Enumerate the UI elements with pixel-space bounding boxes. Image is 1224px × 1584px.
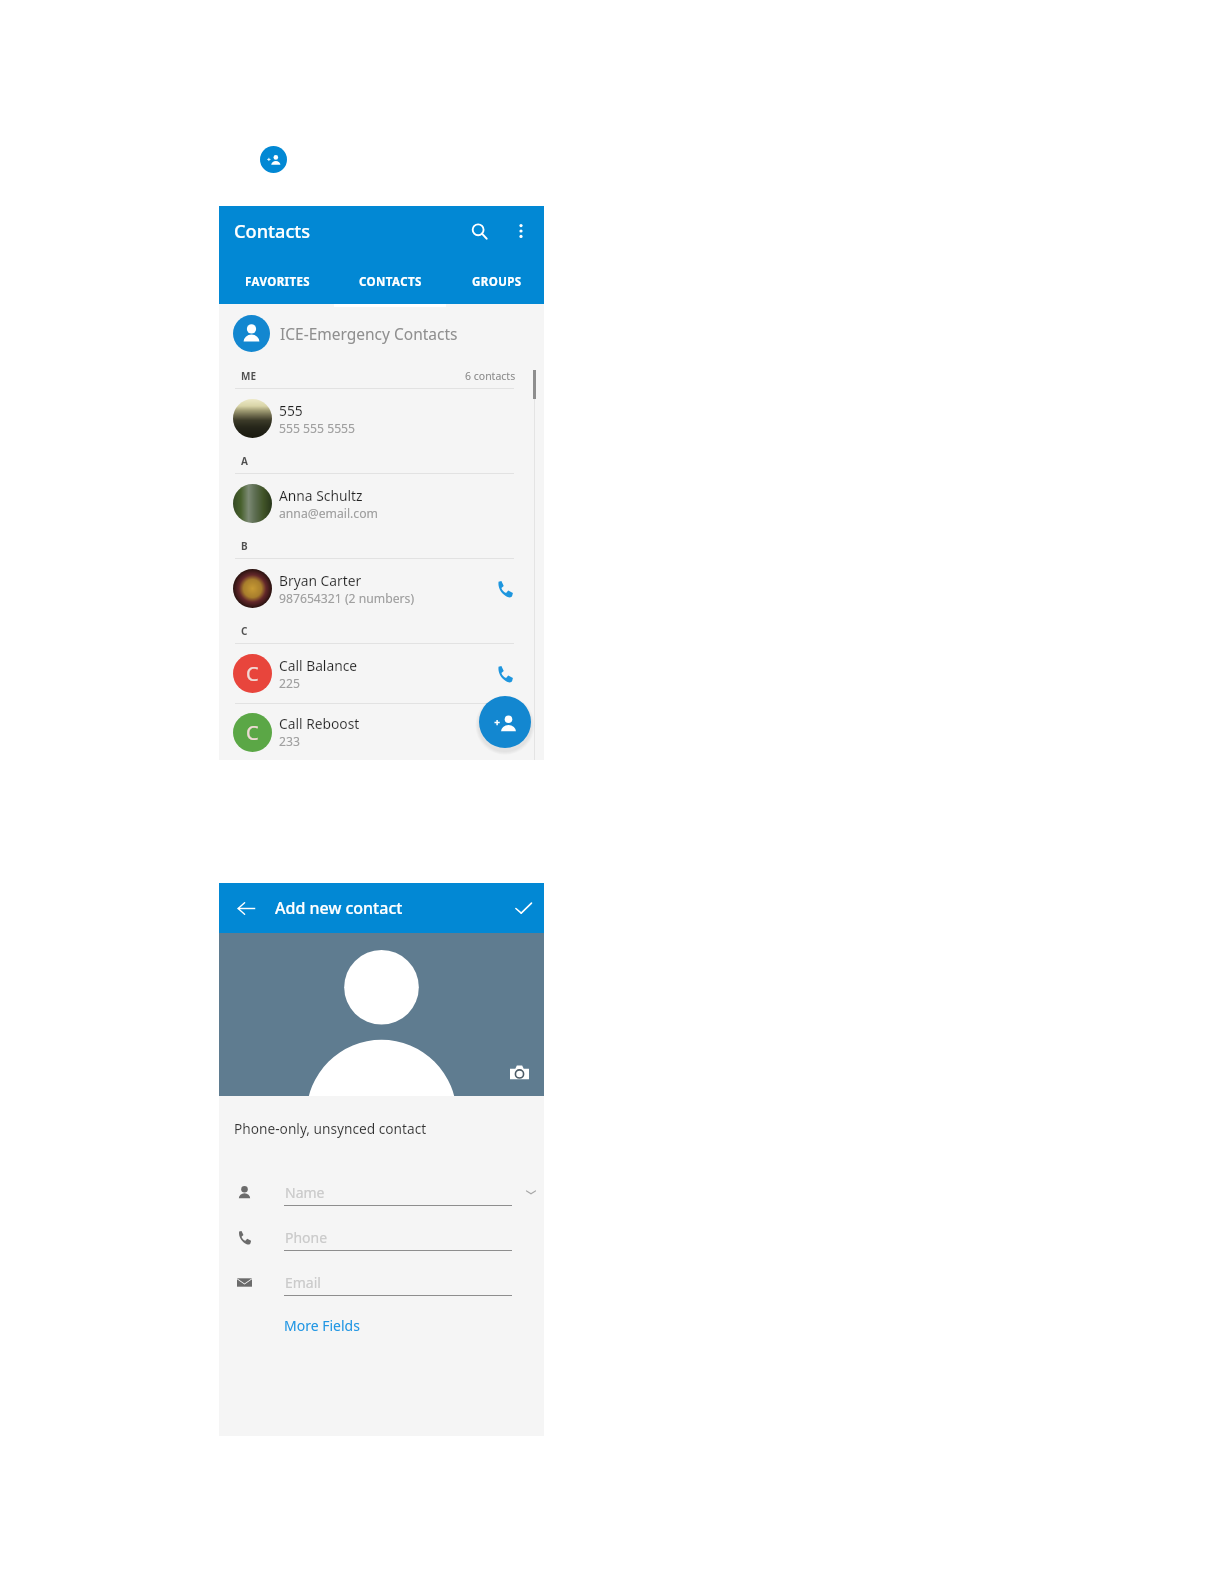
button[interactable]: C (219, 704, 544, 760)
staticText: GROUPS (472, 274, 522, 290)
staticText: 555 555 5555 (279, 420, 356, 437)
staticText: A (241, 454, 248, 468)
button[interactable]: 555 (219, 389, 544, 448)
staticText: Name (285, 1183, 325, 1202)
staticText: 6 contacts (465, 369, 516, 383)
staticText: B (241, 539, 248, 553)
staticText: anna@email.com (279, 505, 378, 522)
staticText: C (241, 624, 248, 638)
button[interactable]: Search (461, 213, 498, 250)
staticText: Bryan Carter (279, 571, 362, 590)
staticText: ME (241, 369, 257, 383)
staticText: FAVORITES (245, 274, 311, 290)
button[interactable]: More Fields (284, 1316, 360, 1335)
button[interactable]: FAVORITES (222, 256, 334, 304)
button[interactable]: CONTACTS (334, 256, 446, 304)
staticText: 233 (279, 733, 300, 750)
button[interactable]: Save (507, 892, 540, 925)
button[interactable]: Back (230, 892, 263, 925)
button[interactable]: Anna Schultz (219, 474, 544, 533)
button[interactable]: C (219, 644, 544, 703)
staticText: CONTACTS (359, 274, 422, 290)
staticText: Contacts (234, 219, 311, 244)
button[interactable]: Call (490, 574, 520, 604)
button[interactable]: Add contact (260, 146, 287, 173)
staticText: 555 (279, 401, 303, 420)
staticText: Email (285, 1273, 321, 1292)
button[interactable]: ICE-Emergency Contacts (219, 304, 544, 363)
staticText: C (246, 660, 259, 687)
staticText: 987654321 (2 numbers) (279, 590, 415, 607)
staticText: 225 (279, 675, 300, 692)
button[interactable]: Call (490, 659, 520, 689)
staticText: Add new contact (275, 897, 403, 919)
staticText: ICE-Emergency Contacts (280, 323, 458, 344)
staticText: C (246, 719, 259, 746)
button[interactable]: Bryan Carter (219, 559, 544, 618)
staticText: Call Reboost (279, 714, 360, 733)
staticText: Phone-only, unsynced contact (234, 1119, 427, 1138)
staticText: More Fields (284, 1316, 360, 1335)
staticText: Phone (285, 1228, 328, 1247)
staticText: Call Balance (279, 656, 358, 675)
button[interactable]: Change photo (508, 1061, 530, 1083)
staticText: Anna Schultz (279, 486, 363, 505)
button[interactable]: GROUPS (446, 256, 547, 304)
button[interactable]: More options (503, 213, 539, 249)
button[interactable]: Add new contact (479, 696, 531, 748)
